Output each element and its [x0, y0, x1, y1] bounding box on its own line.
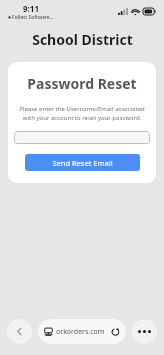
staticText: School District [32, 30, 133, 49]
staticText: Follett Software… [12, 14, 54, 21]
button[interactable]: More options [132, 319, 157, 344]
button[interactable]: Send Reset Email [25, 154, 140, 171]
staticText: Password Reset [27, 74, 137, 93]
button[interactable]: orkorders.com [38, 319, 126, 344]
button[interactable] [14, 131, 150, 144]
staticText: Please enter the Username/Email associat… [14, 105, 150, 122]
staticText: 9:11 [23, 3, 39, 14]
staticText: orkorders.com [56, 327, 109, 337]
button[interactable]: Back [7, 319, 32, 344]
staticText: Send Reset Email [52, 158, 113, 168]
